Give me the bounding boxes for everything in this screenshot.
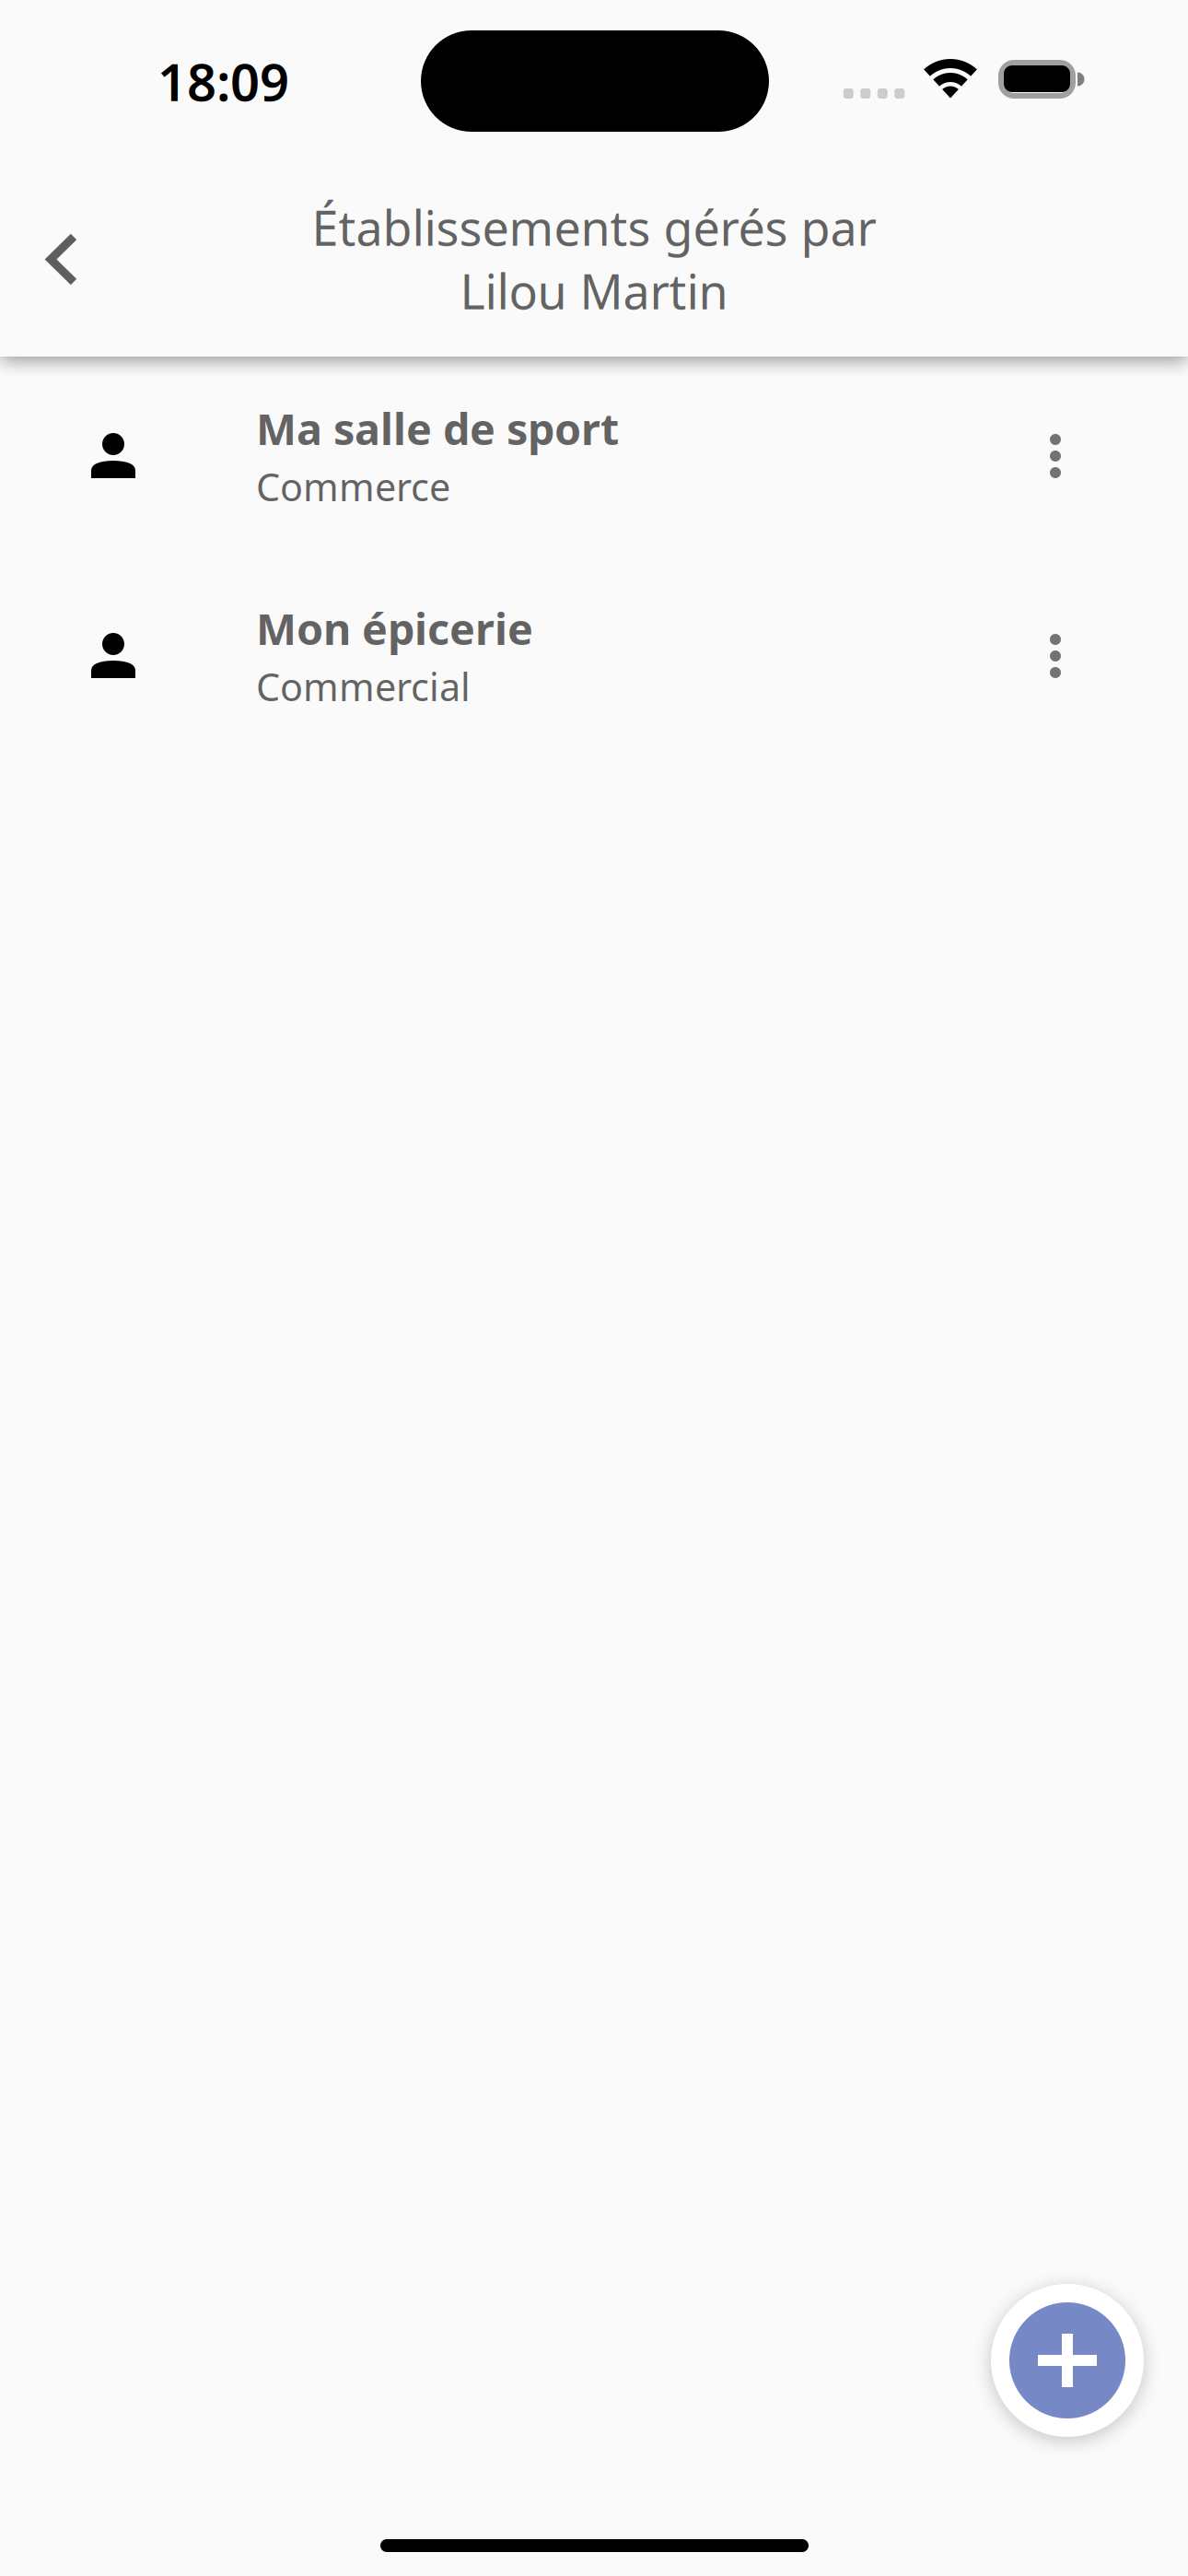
staticText: 18:09 [157, 47, 289, 115]
button[interactable]: Back [0, 199, 120, 319]
staticText: Lilou Martin [460, 259, 728, 323]
staticText: Commercial [256, 661, 471, 712]
button[interactable]: Mon épicerie [0, 568, 1188, 768]
button[interactable]: Add [991, 2284, 1144, 2437]
staticText: Commerce [256, 461, 450, 512]
staticText: Établissements gérés par [312, 195, 876, 259]
button[interactable]: Ma salle de sport [0, 369, 1188, 568]
staticText: Mon épicerie [256, 600, 533, 657]
staticText: Ma salle de sport [256, 400, 619, 457]
